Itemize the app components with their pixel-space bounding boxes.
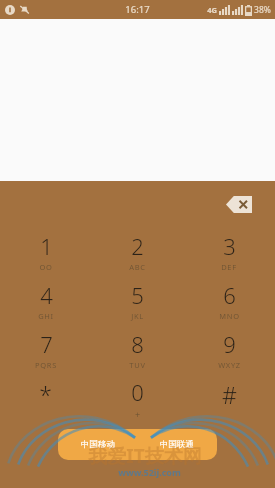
staticText: # — [222, 379, 237, 410]
button[interactable]: 4 — [0, 276, 91, 325]
staticText: OO — [39, 262, 53, 272]
staticText: www.52ij.com — [118, 466, 181, 478]
button[interactable]: 9 — [183, 325, 275, 374]
button[interactable]: * — [0, 374, 91, 423]
staticText: 38% — [254, 4, 271, 16]
staticText: JKL — [131, 311, 144, 321]
staticText: 4 — [40, 280, 53, 310]
staticText: 16:17 — [125, 3, 150, 16]
button[interactable]: 1 — [0, 227, 91, 276]
staticText: 4G — [207, 5, 217, 15]
staticText: PQRS — [35, 360, 57, 370]
staticText: 2 — [131, 231, 144, 261]
button[interactable]: 中国联通 — [137, 429, 217, 460]
button[interactable]: 5 — [91, 276, 183, 325]
staticText: 5 — [131, 280, 144, 310]
button[interactable]: 8 — [91, 325, 183, 374]
button[interactable]: 7 — [0, 325, 91, 374]
staticText: TUV — [129, 360, 146, 370]
button[interactable]: 2 — [91, 227, 183, 276]
staticText: WXYZ — [218, 360, 241, 370]
staticText: + — [135, 408, 141, 420]
button[interactable]: 6 — [183, 276, 275, 325]
button[interactable]: Backspace — [221, 189, 257, 219]
button[interactable]: # — [183, 374, 275, 423]
staticText: * — [39, 379, 52, 410]
staticText: DEF — [221, 262, 237, 272]
button[interactable]: 0 — [91, 374, 183, 423]
staticText: 中国联通 — [160, 439, 194, 450]
staticText: 7 — [40, 329, 53, 359]
staticText: 中国移动 — [81, 439, 115, 450]
staticText: ABC — [129, 262, 146, 272]
staticText: 9 — [223, 329, 236, 359]
staticText: MNO — [219, 311, 240, 321]
button[interactable]: 中国移动 — [58, 429, 137, 460]
staticText: GHI — [38, 311, 54, 321]
staticText: 3 — [223, 231, 236, 261]
staticText: 6 — [223, 280, 236, 310]
staticText: 1 — [40, 231, 53, 261]
staticText: 0 — [131, 377, 144, 407]
staticText: 8 — [131, 329, 144, 359]
staticText: 我爱IT技术网 — [88, 443, 202, 469]
button[interactable]: 3 — [183, 227, 275, 276]
